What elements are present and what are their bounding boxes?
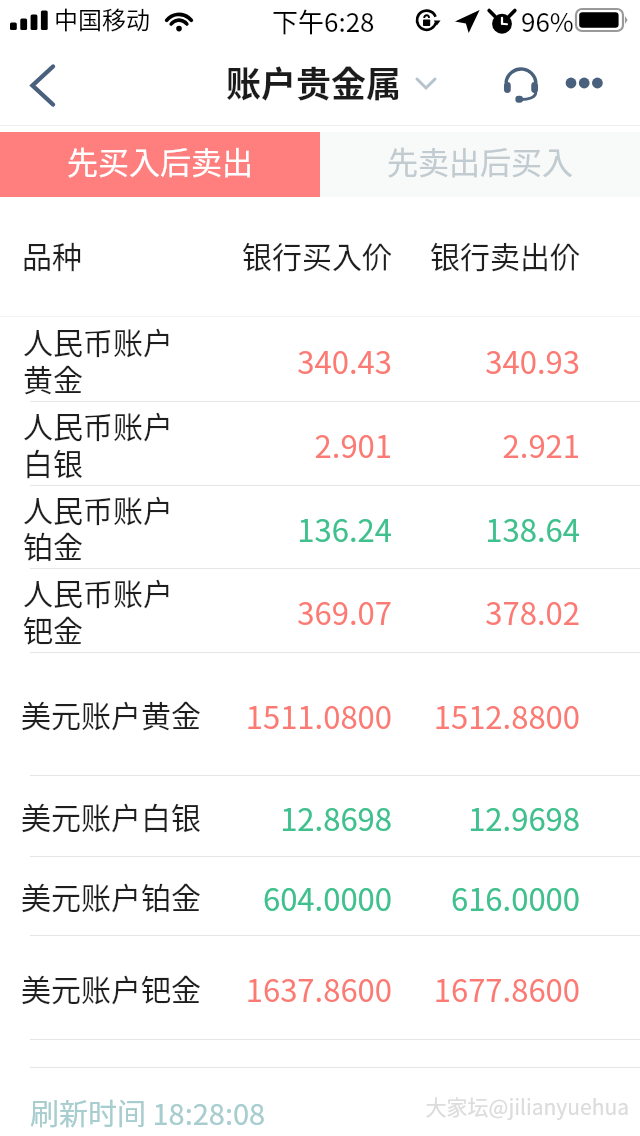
button[interactable]: 美元账户钯金	[0, 935, 640, 1039]
staticText: 12.9698	[280, 795, 580, 840]
staticText: 刷新时间 18:28:08	[30, 1091, 266, 1133]
staticText: 616.0000	[280, 875, 580, 920]
staticText: 人民币账户	[23, 319, 173, 362]
staticText: 银行买入价	[92, 233, 392, 276]
staticText: 340.43	[92, 338, 392, 383]
staticText: 人民币账户	[23, 403, 173, 446]
staticText: 美元账户铂金	[21, 874, 201, 917]
staticText: 中国移动	[54, 1, 150, 36]
button[interactable]: 人民币账户	[0, 485, 640, 568]
staticText: 2.921	[280, 422, 580, 467]
staticText: 品种	[22, 233, 82, 276]
button[interactable]: 人民币账户	[0, 401, 640, 485]
staticText: 账户贵金属	[226, 56, 402, 107]
button[interactable]: 先卖出后买入	[320, 132, 640, 197]
staticText: 先买入后卖出	[67, 138, 253, 183]
staticText: 96%	[521, 2, 574, 40]
staticText: 人民币账户	[23, 570, 173, 613]
staticText: 美元账户白银	[21, 794, 201, 837]
staticText: 大家坛@jilianyuehua	[130, 1091, 629, 1121]
button[interactable]: 美元账户白银	[0, 775, 640, 856]
staticText: 下午6:28	[272, 2, 375, 40]
button[interactable]: 账户贵金属	[226, 56, 438, 107]
button[interactable]: 美元账户铂金	[0, 856, 640, 935]
staticText: 340.93	[280, 338, 580, 383]
staticText: 黄金	[23, 356, 83, 399]
staticText: 1637.8600	[92, 966, 392, 1011]
staticText: 378.02	[280, 589, 580, 634]
staticText: 美元账户黄金	[21, 692, 201, 735]
staticText: 136.24	[92, 506, 392, 551]
button[interactable]: 人民币账户	[0, 317, 640, 401]
staticText: 369.07	[92, 589, 392, 634]
button[interactable]: 人民币账户	[0, 568, 640, 652]
staticText: 2.901	[92, 422, 392, 467]
staticText: 604.0000	[92, 875, 392, 920]
staticText: 138.64	[280, 506, 580, 551]
staticText: 钯金	[23, 607, 83, 650]
staticText: 1511.0800	[92, 693, 392, 738]
staticText: 银行卖出价	[280, 233, 580, 276]
button[interactable]: Customer service	[483, 40, 563, 126]
staticText: 1512.8800	[280, 693, 580, 738]
staticText: 12.8698	[92, 795, 392, 840]
staticText: 美元账户钯金	[21, 966, 201, 1009]
staticText: 先卖出后买入	[387, 138, 573, 183]
button[interactable]: More options	[563, 40, 640, 126]
staticText: 1677.8600	[280, 966, 580, 1011]
button[interactable]: 先买入后卖出	[0, 132, 320, 197]
staticText: 铂金	[23, 523, 83, 566]
button[interactable]: 美元账户黄金	[0, 652, 640, 775]
staticText: 人民币账户	[23, 487, 173, 530]
button[interactable]: Back	[8, 40, 78, 126]
staticText: 白银	[23, 440, 83, 483]
